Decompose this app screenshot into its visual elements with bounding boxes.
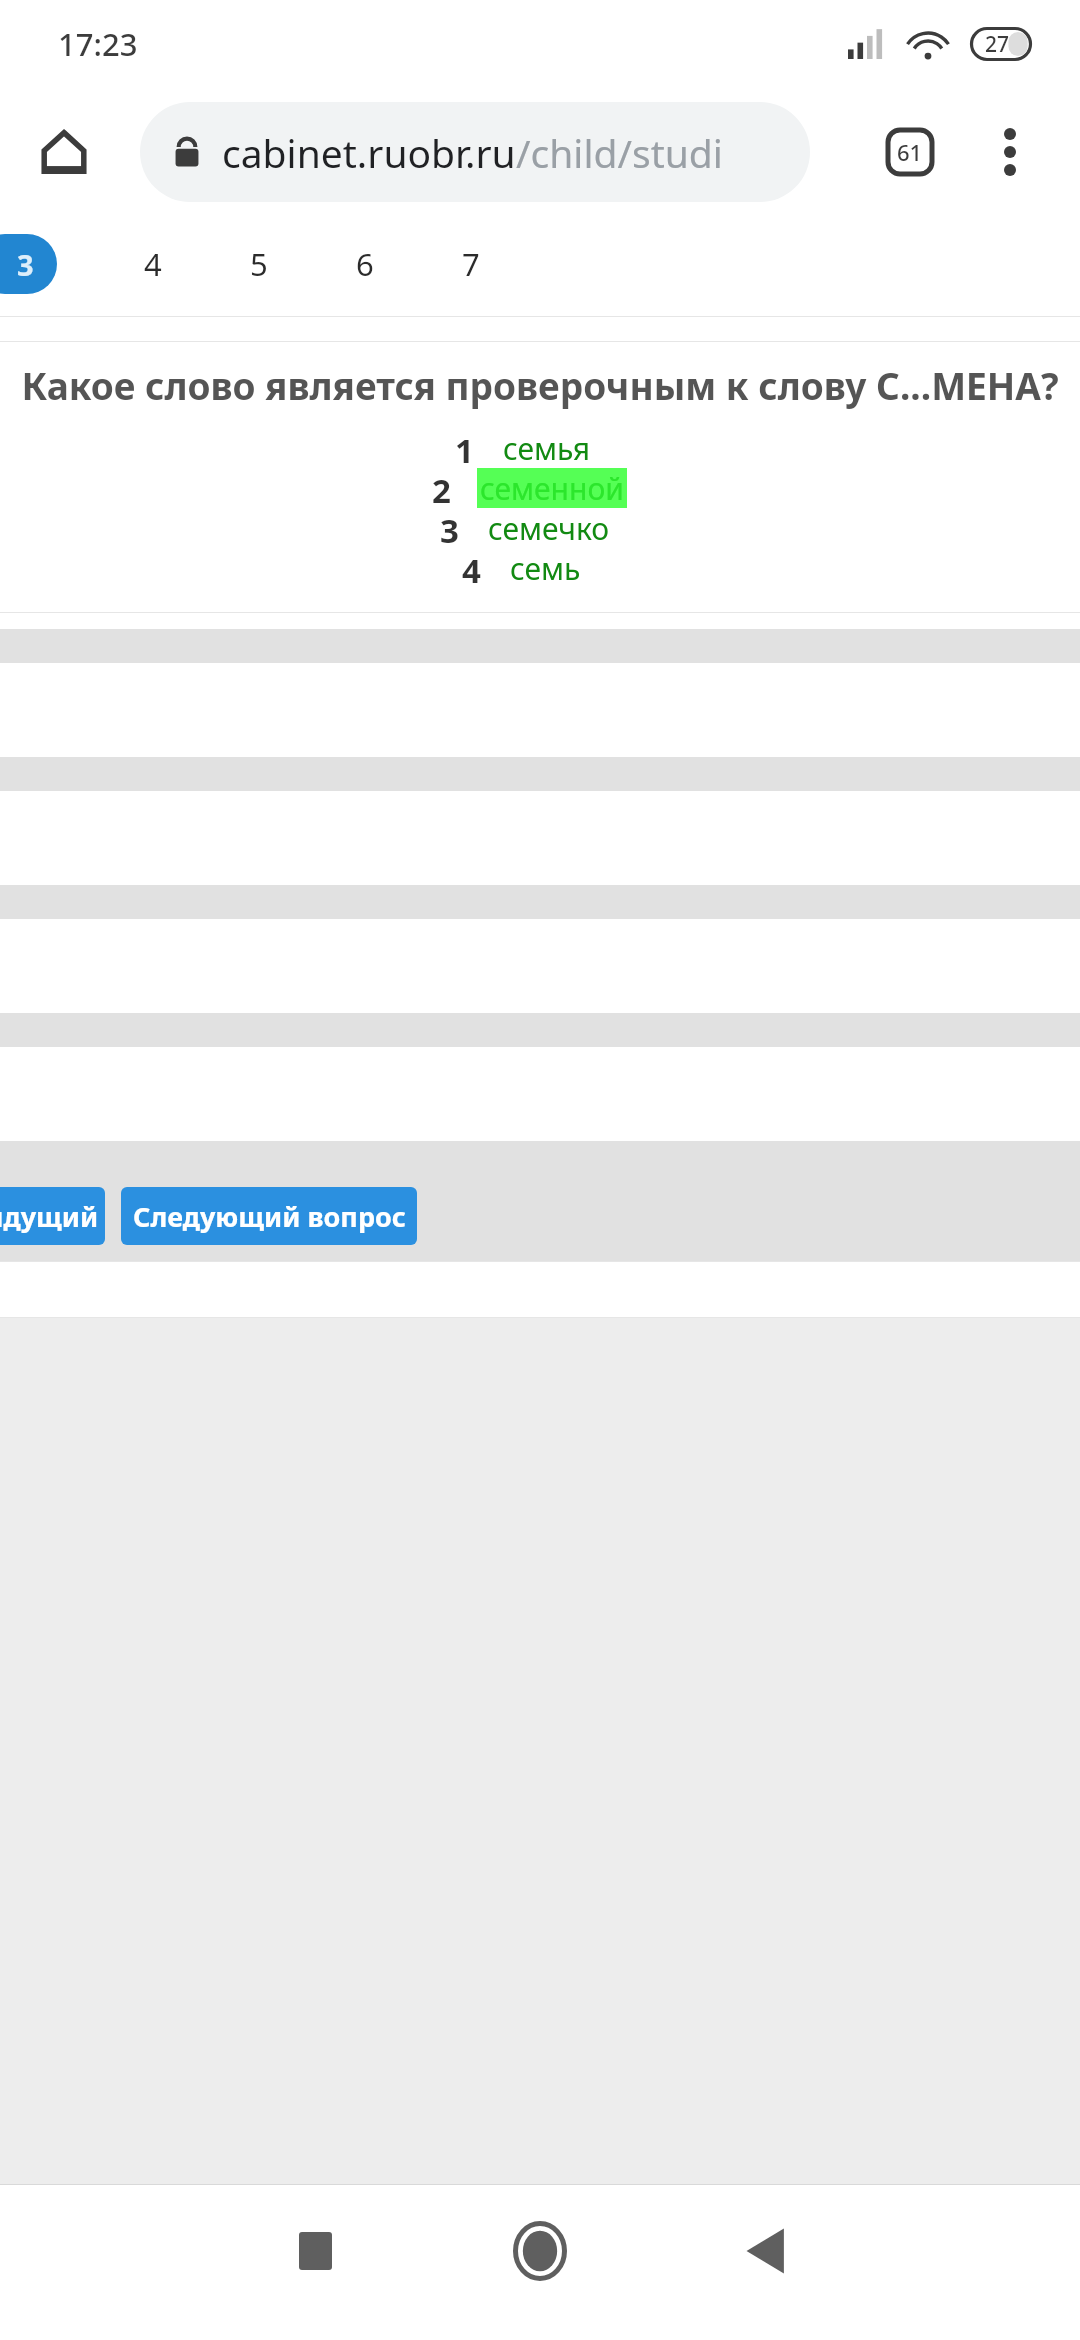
button[interactable]: More options	[970, 112, 1050, 192]
staticText: 3	[17, 245, 34, 284]
button[interactable]: Home	[495, 2206, 585, 2296]
staticText: 5	[250, 243, 268, 285]
staticText: Какое слово является проверочным к слову…	[4, 360, 1076, 410]
staticText: 27	[985, 30, 1010, 59]
staticText: 17:23	[58, 23, 138, 65]
button[interactable]: 2	[0, 468, 1080, 508]
staticText: cabinet.ruobr.ru	[222, 126, 516, 179]
staticText: 4	[462, 548, 481, 588]
staticText: /child/studi	[516, 126, 723, 179]
button[interactable]: 6	[334, 233, 396, 295]
staticText: семенной	[480, 468, 624, 508]
button[interactable]: 3	[0, 508, 1080, 548]
button[interactable]: 3	[0, 234, 57, 294]
button[interactable]: 7	[440, 233, 502, 295]
button[interactable]: 4	[122, 233, 184, 295]
button[interactable]: 1	[0, 428, 1080, 468]
staticText: 2	[432, 468, 451, 508]
staticText: семья	[503, 428, 591, 468]
button[interactable]: Предыдущий вопрос	[0, 1187, 105, 1245]
button[interactable]: Следующий вопрос	[121, 1187, 417, 1245]
staticText: 1	[455, 428, 474, 468]
staticText: семечко	[488, 508, 610, 548]
button[interactable]: 4	[0, 548, 1080, 588]
staticText: 3	[440, 508, 459, 548]
staticText: Следующий вопрос	[133, 1198, 406, 1235]
staticText: 61	[897, 137, 923, 167]
staticText: 4	[144, 243, 162, 285]
staticText: семь	[510, 548, 581, 588]
staticText: Предыдущий вопрос	[0, 1198, 105, 1235]
staticText: 6	[356, 243, 374, 285]
button[interactable]: Home	[24, 112, 104, 192]
staticText: 7	[462, 243, 480, 285]
button[interactable]: 5	[228, 233, 290, 295]
button[interactable]: Tabs	[870, 112, 950, 192]
button[interactable]: Back	[720, 2206, 810, 2296]
button[interactable]: cabinet.ruobr.ru	[140, 102, 810, 202]
button[interactable]: Recent apps	[270, 2206, 360, 2296]
